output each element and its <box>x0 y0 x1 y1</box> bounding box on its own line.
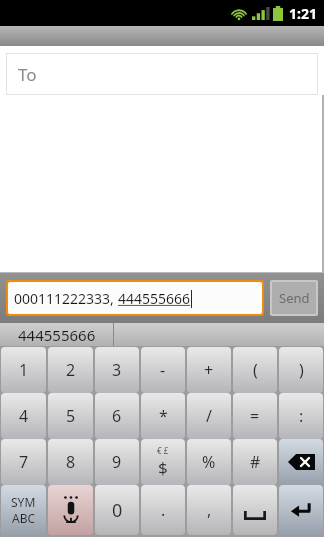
button[interactable]: Voice input <box>48 485 93 535</box>
staticText: # <box>250 451 261 473</box>
button[interactable]: : <box>279 393 323 439</box>
staticText: 000111222333, <box>14 289 118 308</box>
staticText: 6 <box>112 405 122 427</box>
button[interactable]: # <box>233 439 277 485</box>
staticText: 2 <box>66 359 76 381</box>
button[interactable]: / <box>187 393 231 439</box>
staticText: 1 <box>19 359 29 381</box>
button[interactable] <box>114 323 324 346</box>
button[interactable]: % <box>187 439 231 485</box>
button[interactable]: Delete <box>279 439 323 485</box>
button[interactable]: € £ <box>141 439 185 485</box>
staticText: / <box>206 405 212 427</box>
staticText: Send <box>279 289 310 307</box>
staticText: € £ <box>157 445 169 456</box>
button[interactable]: ) <box>279 347 323 393</box>
button[interactable]: * <box>141 393 185 439</box>
staticText: 8 <box>66 451 76 473</box>
button[interactable]: 4 <box>1 393 46 439</box>
button[interactable]: . <box>141 485 185 535</box>
staticText: 4 <box>19 405 29 427</box>
staticText: = <box>250 405 260 427</box>
button[interactable]: To <box>6 53 318 95</box>
button[interactable]: 5 <box>48 393 93 439</box>
button[interactable]: Send <box>272 282 316 314</box>
staticText: ABC <box>12 510 36 526</box>
button[interactable]: ( <box>233 347 277 393</box>
staticText: 444555666 <box>18 325 96 345</box>
staticText: 9 <box>112 451 122 473</box>
button[interactable]: 8 <box>48 439 93 485</box>
button[interactable]: 7 <box>1 439 46 485</box>
button[interactable]: 2 <box>48 347 93 393</box>
staticText: ( <box>253 359 258 381</box>
staticText: 7 <box>19 451 29 473</box>
staticText: + <box>204 359 214 381</box>
staticText: $ <box>158 456 168 479</box>
staticText: SYM <box>11 494 36 510</box>
button[interactable]: + <box>187 347 231 393</box>
button[interactable]: Enter <box>279 485 323 535</box>
button[interactable]: 6 <box>95 393 139 439</box>
staticText: 0 <box>112 498 123 523</box>
staticText: ) <box>299 359 304 381</box>
staticText: - <box>160 359 166 381</box>
button[interactable]: , <box>187 485 231 535</box>
staticText: 5 <box>66 405 76 427</box>
button[interactable]: 3 <box>95 347 139 393</box>
staticText: . <box>161 499 166 521</box>
staticText: : <box>299 405 304 427</box>
staticText: To <box>18 63 37 86</box>
button[interactable]: 9 <box>95 439 139 485</box>
staticText: 1:21 <box>289 4 317 23</box>
button[interactable]: = <box>233 393 277 439</box>
staticText: * <box>159 405 168 427</box>
staticText: % <box>202 451 216 473</box>
button[interactable]: Space <box>233 485 277 535</box>
staticText: , <box>207 499 212 521</box>
staticText: 444555666 <box>118 289 191 308</box>
button[interactable]: 1 <box>1 347 46 393</box>
button[interactable]: Symbols <box>1 485 46 535</box>
button[interactable]: 444555666 <box>0 323 113 346</box>
button[interactable]: 000111222333, <box>8 282 262 314</box>
button[interactable]: - <box>141 347 185 393</box>
button[interactable]: 0 <box>95 485 139 535</box>
staticText: 3 <box>112 359 122 381</box>
